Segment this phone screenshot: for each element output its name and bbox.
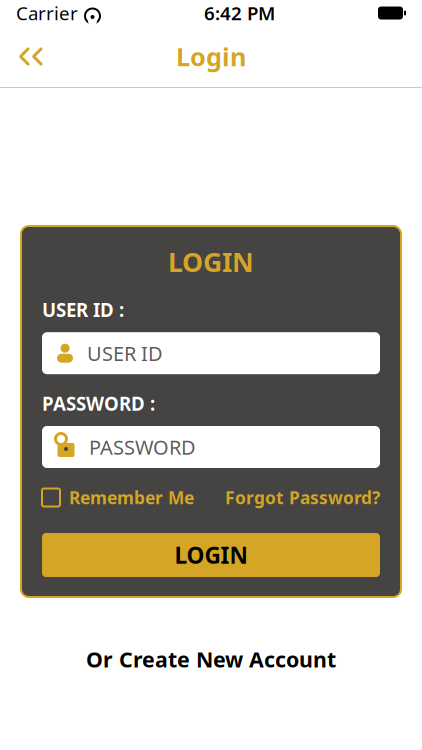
staticText: PASSWORD [89, 434, 196, 460]
staticText: 6:42 PM [204, 1, 275, 25]
staticText: LOGIN [174, 540, 247, 570]
button[interactable]: LOGIN [42, 533, 380, 577]
button[interactable]: Back [8, 35, 54, 77]
staticText: Forgot Password? [225, 486, 380, 509]
staticText: USER ID [87, 340, 163, 366]
staticText: PASSWORD : [42, 391, 155, 416]
staticText: Remember Me [69, 486, 194, 509]
button[interactable]: Forgot Password? [225, 486, 380, 509]
staticText: Carrier [16, 1, 78, 25]
staticText: Or Create New Account [86, 645, 336, 673]
staticText: Login [176, 40, 246, 73]
staticText: USER ID : [42, 297, 124, 322]
button[interactable]: Or Create New Account [78, 641, 344, 677]
button[interactable]: Remember Me [42, 486, 194, 509]
staticText: LOGIN [168, 244, 254, 279]
